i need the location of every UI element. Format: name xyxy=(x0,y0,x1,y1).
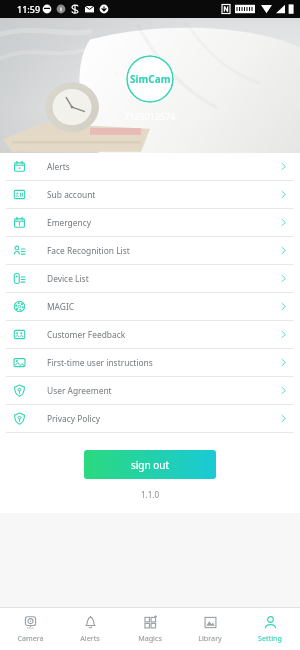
button[interactable]: Camera xyxy=(0,608,60,650)
staticText: Face Recognition List xyxy=(47,245,130,256)
staticText: 7135012574 xyxy=(124,110,176,122)
button[interactable]: Setting xyxy=(240,608,300,650)
staticText: Camera xyxy=(17,633,44,643)
staticText: 1.1.0 xyxy=(141,489,160,500)
button[interactable]: Magics xyxy=(120,608,180,650)
staticText: User Agreement xyxy=(47,385,112,396)
staticText: Setting xyxy=(258,633,282,643)
staticText: Magics xyxy=(138,633,162,643)
button[interactable]: Customer Feedback xyxy=(0,321,300,349)
staticText: Privacy Policy xyxy=(47,413,100,424)
staticText: Alerts xyxy=(80,633,100,643)
button[interactable]: Privacy Policy xyxy=(0,405,300,433)
staticText: First-time user instructions xyxy=(47,357,153,368)
button[interactable]: Face Recognition List xyxy=(0,237,300,265)
button[interactable]: Emergency xyxy=(0,209,300,237)
button[interactable]: SimCam xyxy=(126,55,174,103)
button[interactable]: Library xyxy=(180,608,240,650)
staticText: Emergency xyxy=(47,217,92,228)
button[interactable]: First-time user instructions xyxy=(0,349,300,377)
button[interactable]: Alerts xyxy=(0,153,300,181)
button[interactable]: User Agreement xyxy=(0,377,300,405)
button[interactable]: Device List xyxy=(0,265,300,293)
staticText: MAGIC xyxy=(47,301,75,312)
staticText: Library xyxy=(198,633,222,643)
button[interactable]: Sub account xyxy=(0,181,300,209)
staticText: 11:59 xyxy=(17,3,41,15)
staticText: Sub account xyxy=(47,189,96,200)
staticText: Alerts xyxy=(47,161,70,172)
staticText: sign out xyxy=(131,458,170,472)
staticText: Customer Feedback xyxy=(47,329,126,340)
button[interactable]: MAGIC xyxy=(0,293,300,321)
staticText: SimCam xyxy=(130,72,171,86)
button[interactable]: Alerts xyxy=(60,608,120,650)
button[interactable]: sign out xyxy=(84,450,216,479)
staticText: Device List xyxy=(47,273,89,284)
